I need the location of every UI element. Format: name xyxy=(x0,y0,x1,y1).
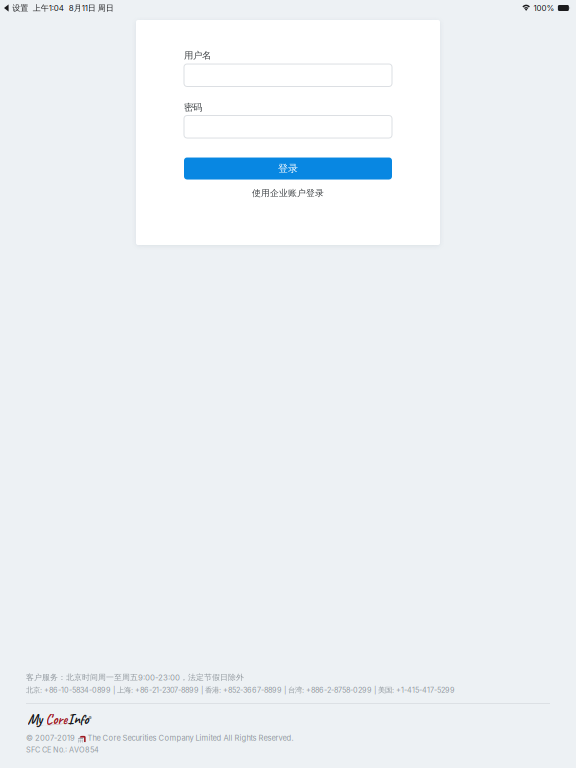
staticText: 用户名 xyxy=(184,49,211,61)
staticText: 100% xyxy=(533,3,554,13)
staticText: 使用企业账户登录 xyxy=(252,187,324,199)
button[interactable]: 返回设置 xyxy=(4,3,28,13)
staticText: 登录 xyxy=(278,162,298,175)
staticText: SFC CE No.: AVO854 xyxy=(26,745,99,754)
button[interactable]: 登录 xyxy=(184,157,392,179)
staticText: 密码 xyxy=(184,101,202,113)
button[interactable]: 使用企业账户登录 xyxy=(184,187,392,199)
staticText: 上午1:04 xyxy=(33,3,64,13)
staticText: 8月11日 周日 xyxy=(69,3,114,13)
staticText: The Core Securities Company Limited All … xyxy=(85,733,293,743)
staticText: ® xyxy=(88,715,91,721)
staticText: 北京: +86-10-5834-0899 | 上海: +86-21-2307-8… xyxy=(26,685,455,695)
staticText: My xyxy=(27,710,45,728)
staticText: Info xyxy=(67,710,88,728)
staticText: Core xyxy=(45,710,67,728)
staticText: 设置 xyxy=(12,3,28,13)
staticText: 客户服务：北京时间周一至周五9:00-23:00，法定节假日除外 xyxy=(26,672,244,682)
staticText: © 2007-2019 xyxy=(26,733,77,743)
